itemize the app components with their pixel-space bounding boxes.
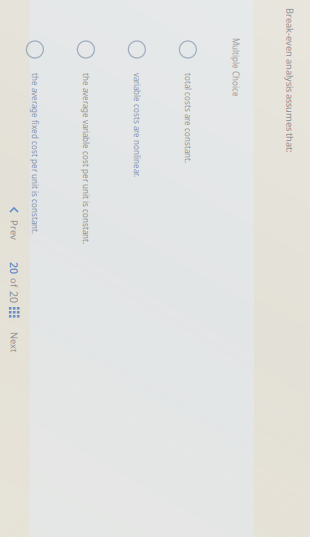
staticText: Break-even analysis assumes that: xyxy=(0,127,39,140)
staticText: variable costs are nonlinear. xyxy=(0,281,63,292)
staticText: total costs are constant. xyxy=(0,230,49,241)
button[interactable]: the average variable cost per unit is co… xyxy=(0,312,310,363)
staticText: the average fixed cost per unit is const… xyxy=(0,383,120,394)
button[interactable]: variable costs are nonlinear. xyxy=(0,261,310,312)
button[interactable]: total costs are constant. xyxy=(0,210,310,261)
staticText: the average variable cost per unit is co… xyxy=(0,332,130,343)
button[interactable]: the average fixed cost per unit is const… xyxy=(0,363,310,414)
